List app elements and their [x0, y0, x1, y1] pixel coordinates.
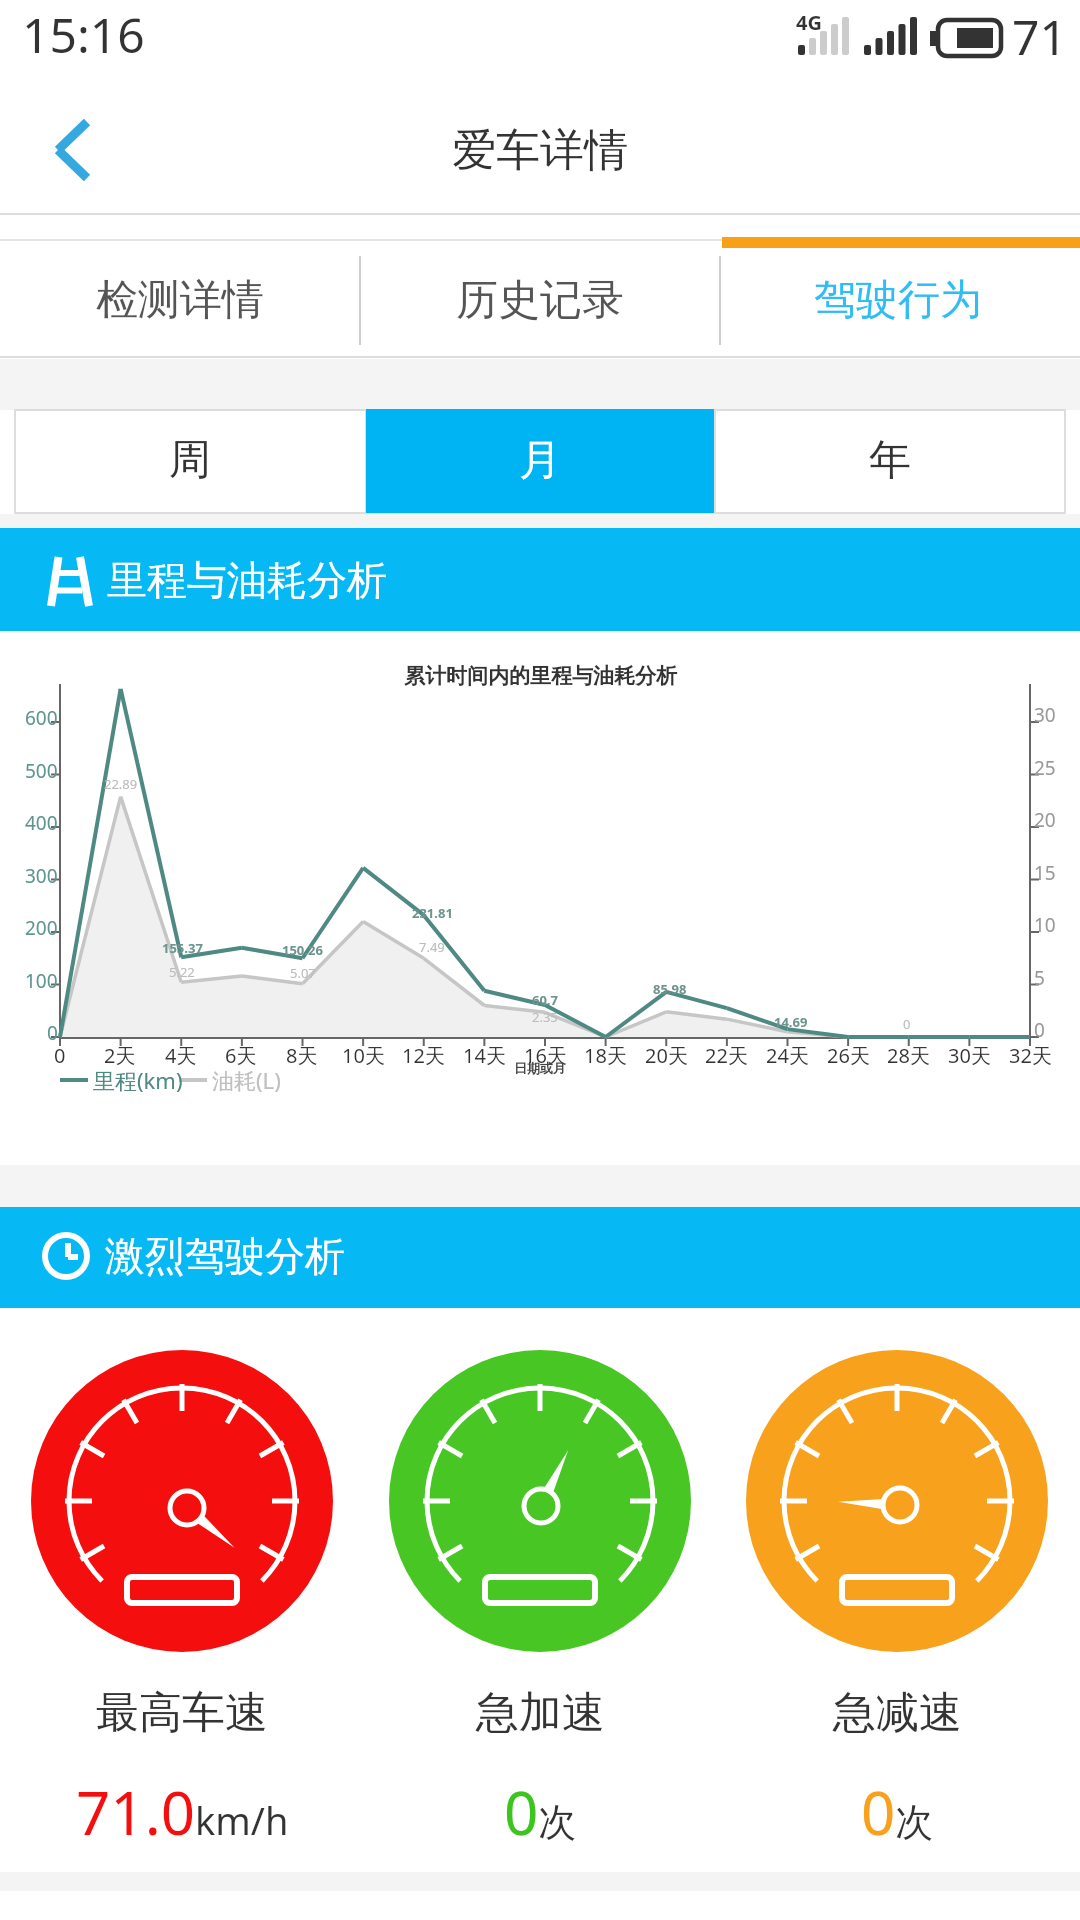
staticText: 5.07 — [290, 964, 316, 982]
staticText: 18天 — [584, 1042, 627, 1069]
staticText: 历史记录 — [456, 274, 624, 327]
staticText: 400 — [25, 810, 58, 836]
staticText: 15 — [1034, 860, 1056, 886]
staticText: 最高车速 — [96, 1686, 268, 1740]
staticText: 油耗(L) — [212, 1065, 281, 1095]
staticText: 0次 — [861, 1771, 934, 1853]
button[interactable] — [360, 240, 720, 357]
staticText: 月 — [519, 434, 561, 487]
staticText: 激烈驾驶分析 — [105, 1231, 345, 1281]
staticText: 25 — [1034, 755, 1056, 781]
staticText: 12天 — [402, 1042, 445, 1069]
staticText: 里程与油耗分析 — [107, 555, 387, 605]
staticText: 6天 — [225, 1042, 257, 1069]
button[interactable] — [16, 411, 365, 512]
staticText: 600 — [25, 705, 58, 731]
staticText: 150.26 — [282, 941, 323, 959]
staticText: 16天 — [524, 1042, 567, 1069]
staticText: 231.81 — [412, 904, 453, 922]
staticText: 急加速 — [476, 1686, 605, 1740]
staticText: 2天 — [104, 1042, 136, 1069]
staticText: 30天 — [948, 1042, 991, 1069]
staticText: 10天 — [342, 1042, 385, 1069]
staticText: 15:16 — [22, 2, 145, 67]
staticText: 28天 — [887, 1042, 930, 1069]
staticText: 20天 — [645, 1042, 688, 1069]
staticText: 5 — [1034, 965, 1045, 991]
staticText: 里程(km) — [93, 1065, 183, 1095]
staticText: 4G — [796, 9, 822, 36]
staticText: 30 — [1034, 702, 1056, 728]
staticText: 100 — [25, 968, 58, 994]
staticText: 4天 — [165, 1042, 197, 1069]
staticText: 26天 — [827, 1042, 870, 1069]
staticText: 急减速 — [833, 1686, 962, 1740]
staticText: 85.98 — [653, 980, 687, 998]
staticText: 8天 — [286, 1042, 318, 1069]
staticText: 22.89 — [104, 775, 138, 793]
staticText: 22天 — [705, 1042, 748, 1069]
staticText: 爱车详情 — [452, 123, 628, 178]
staticText: 14.69 — [774, 1013, 808, 1031]
button[interactable] — [0, 240, 360, 357]
staticText: 检测详情 — [96, 274, 264, 327]
staticText: 32天 — [1009, 1042, 1052, 1069]
staticText: 0 — [54, 1042, 66, 1069]
staticText: 日期或月 — [514, 1060, 566, 1076]
staticText: 300 — [25, 863, 58, 889]
staticText: 年 — [869, 434, 911, 487]
staticText: 5.22 — [169, 963, 195, 981]
staticText: 周 — [169, 434, 211, 487]
staticText: 驾驶行为 — [814, 274, 982, 327]
staticText: 0 — [903, 1015, 911, 1033]
staticText: 0 — [1034, 1017, 1045, 1043]
staticText: 200 — [25, 915, 58, 941]
button[interactable] — [716, 411, 1064, 512]
staticText: 累计时间内的里程与油耗分析 — [404, 663, 677, 689]
staticText: 0次 — [504, 1771, 577, 1853]
staticText: 20 — [1034, 807, 1056, 833]
staticText: 14天 — [463, 1042, 506, 1069]
staticText: 0 — [47, 1020, 58, 1046]
staticText: 155.37 — [162, 939, 203, 957]
staticText: 500 — [25, 758, 58, 784]
staticText: 7.49 — [419, 938, 445, 956]
button[interactable] — [30, 105, 120, 195]
staticText: 10 — [1034, 912, 1056, 938]
staticText: 71.0km/h — [76, 1771, 289, 1853]
button[interactable] — [720, 240, 1080, 357]
staticText: 71 — [1012, 4, 1067, 69]
staticText: 24天 — [766, 1042, 809, 1069]
staticText: 2.35 — [532, 1008, 558, 1026]
staticText: 60.7 — [532, 991, 558, 1009]
button[interactable] — [366, 409, 714, 513]
